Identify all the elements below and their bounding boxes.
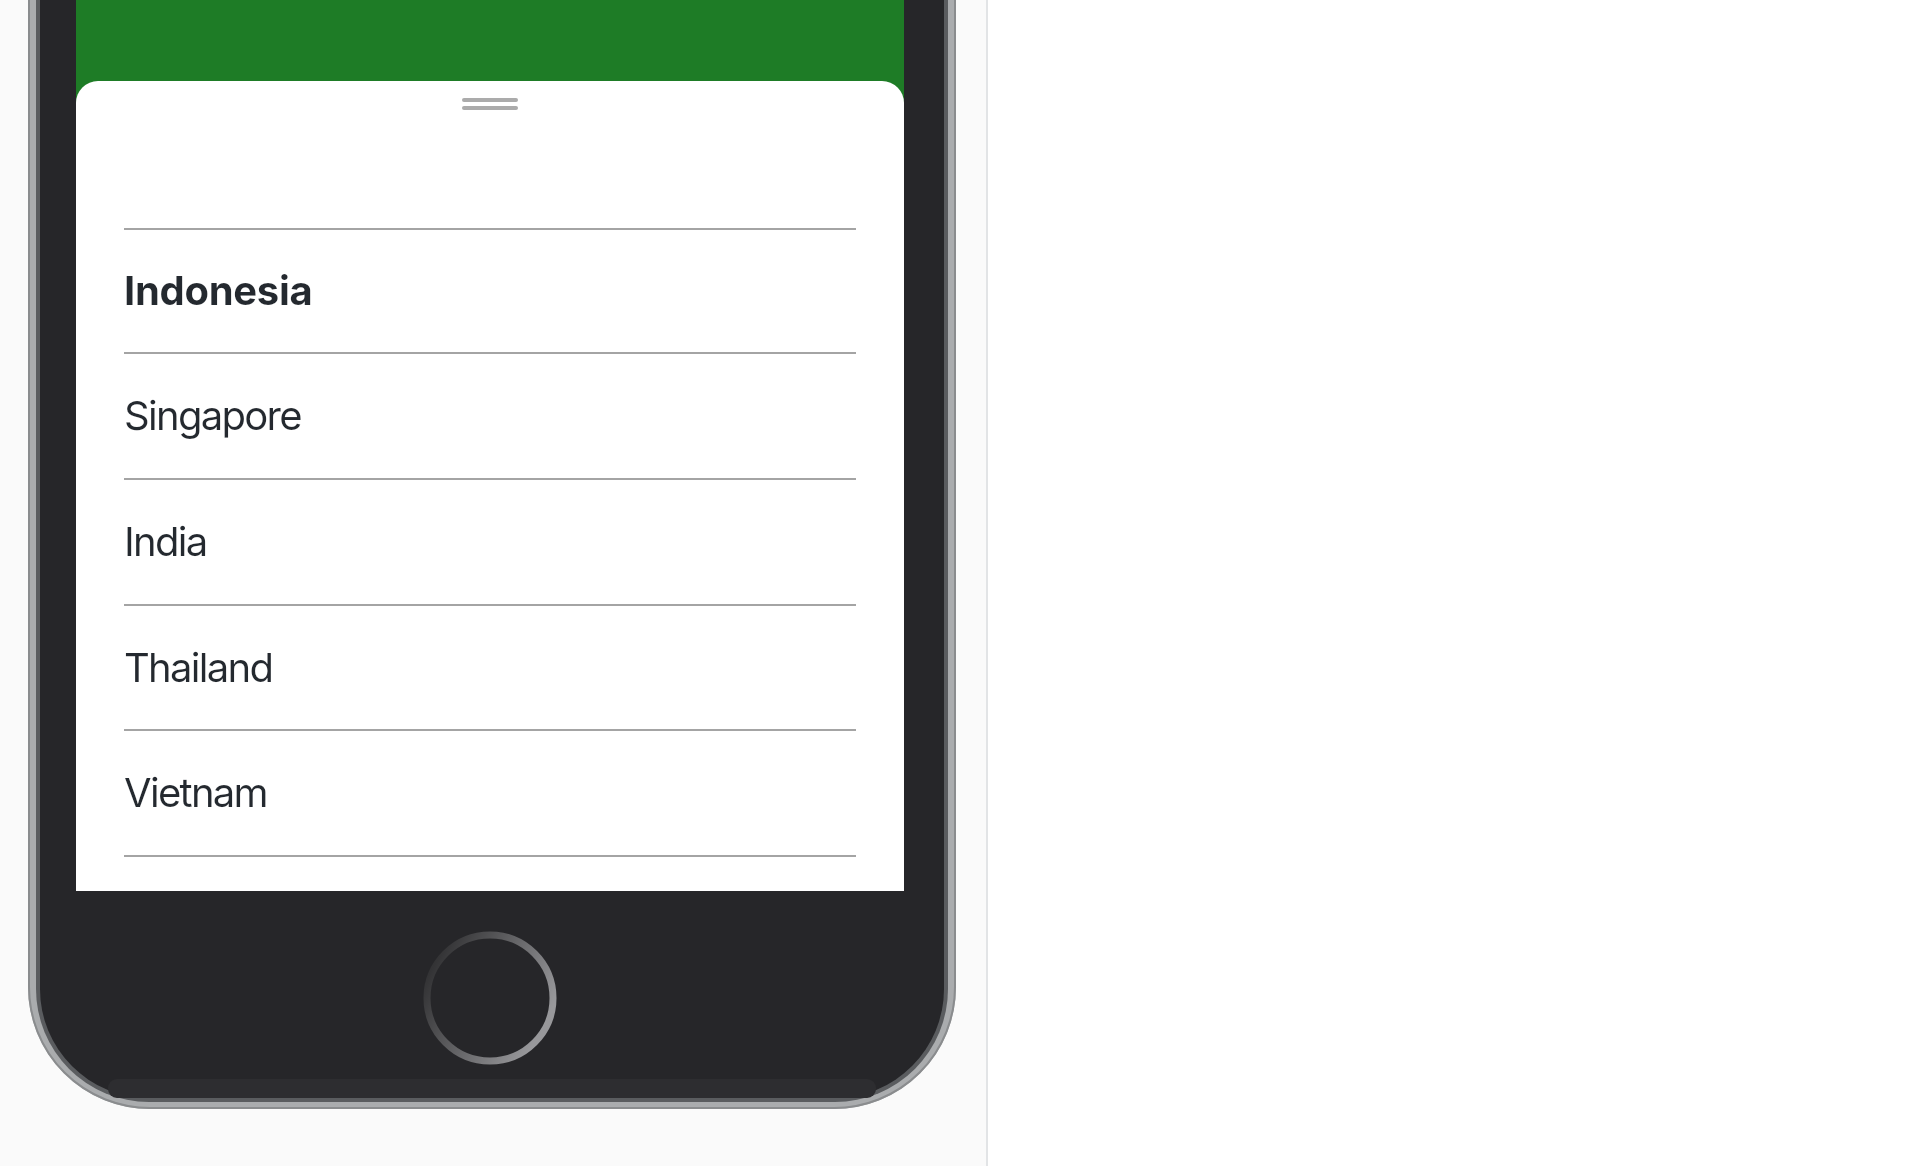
button[interactable]: India [76, 478, 904, 604]
button[interactable]: Singapore [76, 352, 904, 478]
staticText: Indonesia [124, 266, 313, 314]
staticText: Singapore [124, 391, 301, 439]
button[interactable]: Indonesia [76, 228, 904, 352]
staticText: Vietnam [124, 768, 267, 816]
staticText: Thailand [124, 643, 273, 691]
button[interactable]: Vietnam [76, 729, 904, 855]
button[interactable]: Thailand [76, 604, 904, 729]
staticText: India [124, 517, 207, 565]
